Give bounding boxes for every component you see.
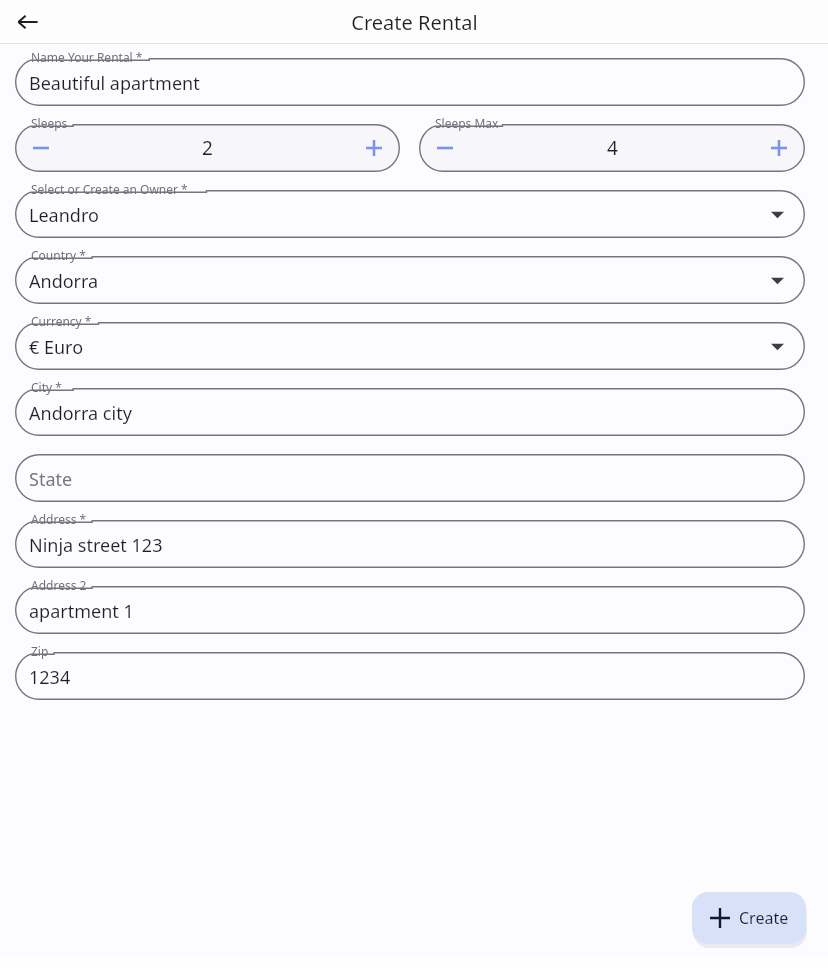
button[interactable]: Open Currency * options [759,328,795,364]
button[interactable]: 1234 [15,652,805,700]
button[interactable]: Ninja street 123 [15,520,805,568]
staticText: Andorra city [29,401,132,426]
staticText: Create Rental [351,9,478,36]
button[interactable]: apartment 1 [15,586,805,634]
button[interactable]: Increase Sleeps [354,128,394,168]
button[interactable]: Decrease Sleeps [21,128,61,168]
staticText: City * [31,379,62,395]
button[interactable]: Beautiful apartment [15,58,805,106]
staticText: Sleeps [31,115,68,131]
staticText: State [29,467,73,492]
staticText: Zip [31,643,49,659]
staticText: Andorra [29,269,99,294]
button[interactable]: Increase Sleeps Max [759,128,799,168]
staticText: Leandro [29,203,99,228]
button[interactable]: € Euro [15,322,805,370]
staticText: Country * [31,247,86,263]
button[interactable]: Open Select or Create an Owner * options [759,196,795,232]
button[interactable]: Create [692,892,806,944]
button[interactable]: Decrease Sleeps Max [425,128,465,168]
staticText: Select or Create an Owner * [31,181,188,197]
staticText: 1234 [29,665,71,690]
staticText: Address 2 [31,577,87,593]
button[interactable]: State [15,454,805,502]
staticText: Beautiful apartment [29,71,200,96]
button[interactable]: Back [6,0,50,44]
button[interactable]: Andorra [15,256,805,304]
staticText: Address * [31,511,87,527]
button[interactable]: Leandro [15,190,805,238]
staticText: Ninja street 123 [29,533,163,558]
button[interactable]: Open Country * options [759,262,795,298]
staticText: Currency * [31,313,92,329]
staticText: apartment 1 [29,599,134,624]
staticText: 2 [202,135,213,161]
staticText: Name Your Rental * [31,49,143,65]
staticText: 4 [607,135,618,161]
button[interactable]: Andorra city [15,388,805,436]
staticText: Create [739,907,789,929]
staticText: Sleeps Max [435,115,499,131]
staticText: € Euro [29,335,84,360]
